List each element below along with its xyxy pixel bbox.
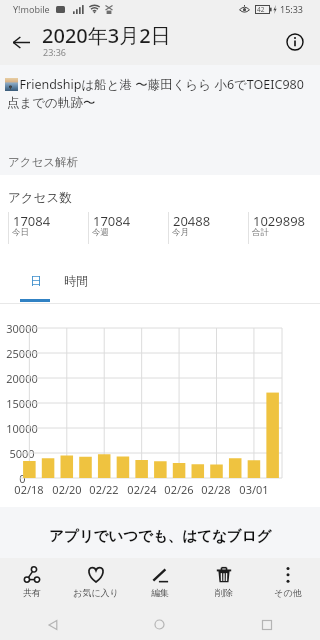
button[interactable]: 編集 — [128, 558, 192, 609]
staticText: 25000 — [6, 346, 38, 360]
button[interactable]: アプリでいつでも、はてなブログ — [0, 507, 320, 558]
staticText: 合計 — [252, 227, 269, 238]
staticText: 42 — [257, 5, 265, 14]
staticText: 03/01 — [239, 482, 269, 497]
staticText: 0 — [19, 471, 26, 485]
staticText: 2020年3月2日 — [42, 22, 171, 49]
staticText: 10000 — [6, 421, 38, 435]
staticText: 02/18 — [14, 482, 44, 497]
staticText: アプリでいつでも、はてなブログ — [49, 527, 272, 545]
staticText: 23:36 — [43, 46, 67, 58]
staticText: 今月 — [172, 227, 189, 238]
staticText: 日 — [30, 273, 42, 288]
button[interactable]: Back — [0, 609, 106, 640]
button[interactable]: 共有 — [0, 558, 64, 609]
staticText: その他 — [274, 587, 302, 598]
staticText: 1029898 — [253, 212, 306, 230]
staticText: 20488 — [173, 212, 211, 230]
staticText: 17084 — [13, 212, 51, 230]
staticText: 02/22 — [89, 482, 119, 497]
staticText: 削除 — [215, 587, 233, 598]
button[interactable]: Friendshipは船と港 〜藤田くらら 小6でTOEIC980点までの軌跡〜 — [0, 65, 320, 148]
staticText: 17084 — [93, 212, 131, 230]
staticText: 編集 — [151, 587, 169, 598]
staticText: 5000 — [9, 446, 35, 460]
staticText: 15:33 — [280, 3, 304, 15]
staticText: 30000 — [6, 321, 38, 335]
staticText: 共有 — [23, 587, 41, 598]
staticText: Friendshipは船と港 〜藤田くらら 小6でTOEIC980点までの軌跡〜 — [7, 76, 316, 111]
button[interactable]: その他 — [256, 558, 320, 609]
button[interactable]: Home — [106, 609, 213, 640]
button[interactable]: Information — [276, 23, 314, 61]
staticText: アクセス解析 — [8, 155, 79, 169]
staticText: 15000 — [6, 396, 38, 410]
staticText: 02/26 — [164, 482, 194, 497]
staticText: 今週 — [92, 227, 109, 238]
button[interactable]: Recents — [213, 609, 320, 640]
staticText: 20000 — [6, 371, 38, 385]
staticText: Y!mobile — [13, 3, 50, 15]
button[interactable]: 日 — [20, 266, 51, 294]
button[interactable]: お気に入り — [64, 558, 128, 609]
staticText: 02/24 — [127, 482, 157, 497]
staticText: アクセス数 — [8, 190, 72, 206]
button[interactable]: 時間 — [51, 266, 101, 294]
staticText: 時間 — [64, 273, 88, 288]
button[interactable]: Back — [0, 21, 42, 63]
staticText: 02/20 — [52, 482, 82, 497]
staticText: お気に入り — [73, 587, 119, 598]
staticText: 02/28 — [201, 482, 231, 497]
staticText: 今日 — [12, 227, 29, 238]
button[interactable]: 削除 — [192, 558, 256, 609]
